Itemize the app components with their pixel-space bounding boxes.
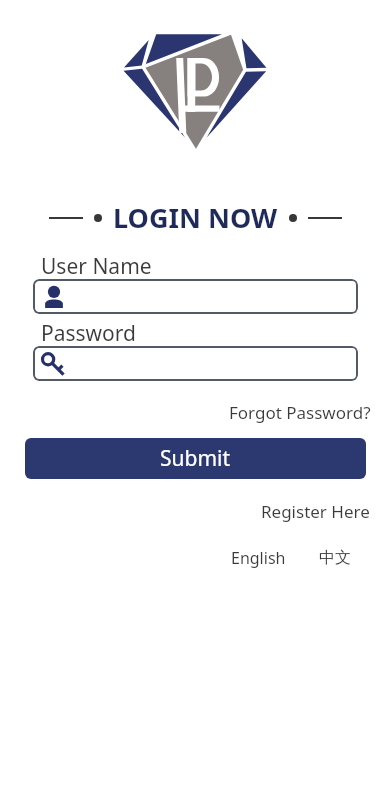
- button[interactable]: Forgot Password?: [226, 398, 374, 427]
- staticText: LOGIN NOW: [113, 199, 278, 236]
- button[interactable]: Register Here: [258, 497, 373, 526]
- staticText: Register Here: [261, 500, 370, 523]
- staticText: Forgot Password?: [229, 401, 371, 424]
- button[interactable]: Submit: [25, 438, 366, 479]
- button[interactable]: English: [228, 544, 289, 572]
- button[interactable]: 中文: [316, 545, 354, 571]
- staticText: Submit: [160, 444, 231, 473]
- button[interactable]: User Name input: [33, 279, 358, 314]
- staticText: 中文: [319, 548, 351, 568]
- staticText: Password: [41, 319, 136, 348]
- staticText: English: [231, 547, 286, 569]
- staticText: User Name: [41, 252, 152, 281]
- button[interactable]: Password input: [33, 346, 358, 381]
